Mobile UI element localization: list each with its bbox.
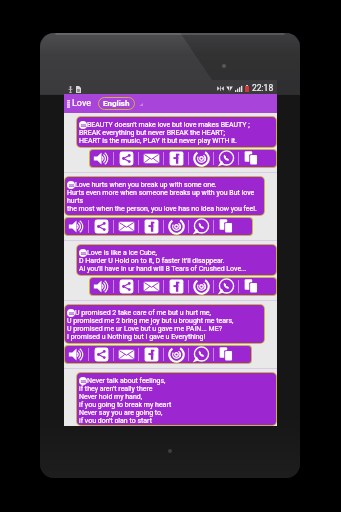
button[interactable]: WhatsApp: [217, 150, 235, 167]
button[interactable]: Menu: [64, 94, 72, 113]
staticText: 22:18: [252, 83, 274, 93]
staticText: the most when the person, you love has n…: [67, 205, 257, 213]
staticText: U promised me 2 bring me joy but u broug…: [67, 317, 234, 325]
button[interactable]: Love hurts when you break up with some o…: [65, 177, 264, 215]
button[interactable]: Love is like a Ice Cube,: [77, 245, 276, 275]
staticText: if you don't plan to start: [79, 417, 152, 423]
button[interactable]: Email: [117, 218, 135, 235]
button[interactable]: U promised 2 take care of me but u hurt …: [65, 305, 264, 343]
button[interactable]: Speak: [92, 278, 110, 295]
staticText: if they aren't really there: [79, 385, 153, 393]
button[interactable]: Facebook: [167, 278, 185, 295]
button[interactable]: English: [98, 97, 135, 110]
staticText: English: [103, 99, 130, 108]
button[interactable]: Speak: [67, 346, 85, 363]
button[interactable]: Speak: [92, 150, 110, 167]
button[interactable]: Copy: [217, 218, 235, 235]
button[interactable]: Copy: [242, 150, 260, 167]
button[interactable]: Instagram: [192, 278, 210, 295]
staticText: if you going to break my heart: [79, 401, 172, 409]
button[interactable]: Copy: [242, 278, 260, 295]
staticText: Hurts even more when someone breaks up w…: [67, 189, 255, 197]
button[interactable]: Instagram: [167, 346, 185, 363]
button[interactable]: Speak: [67, 218, 85, 235]
button[interactable]: Never talk about feelings,: [77, 373, 276, 425]
button[interactable]: Email: [142, 278, 160, 295]
staticText: Al you'll have in ur hand will B Tears o…: [79, 265, 247, 273]
staticText: hurts: [67, 197, 84, 205]
staticText: Love: [72, 98, 91, 109]
button[interactable]: Email: [142, 150, 160, 167]
button[interactable]: Facebook: [142, 218, 160, 235]
button[interactable]: Share: [92, 218, 110, 235]
button[interactable]: Share: [92, 346, 110, 363]
button[interactable]: Instagram: [192, 150, 210, 167]
button[interactable]: WhatsApp: [192, 346, 210, 363]
button[interactable]: Facebook: [142, 346, 160, 363]
button[interactable]: BEAUTY doesn't make love but love makes …: [77, 117, 276, 147]
staticText: Never say you are going to,: [79, 409, 163, 417]
staticText: I promised u Nothing but I gave u Everyt…: [67, 333, 206, 341]
staticText: U promised 2 take care of me but u hurt …: [75, 309, 211, 317]
button[interactable]: Share: [117, 278, 135, 295]
staticText: Never talk about feelings,: [87, 377, 166, 385]
button[interactable]: Copy: [217, 346, 235, 363]
button[interactable]: Share: [117, 150, 135, 167]
button[interactable]: WhatsApp: [217, 278, 235, 295]
button[interactable]: WhatsApp: [192, 218, 210, 235]
button[interactable]: Email: [117, 346, 135, 363]
staticText: Love hurts when you break up with some o…: [75, 181, 217, 189]
staticText: BEAUTY doesn't make love but love makes …: [87, 121, 250, 129]
staticText: HEART is the music, PLAY it but never pl…: [79, 137, 237, 145]
staticText: Love is like a Ice Cube,: [87, 249, 157, 257]
staticText: Never hold my hand,: [79, 393, 143, 401]
staticText: D Harder U Hold on to it, D faster It'll…: [79, 257, 225, 265]
button[interactable]: Facebook: [167, 150, 185, 167]
staticText: U promised me ur Love but u gave me PAIN…: [67, 325, 222, 333]
staticText: BREAK everything but never BREAK the HEA…: [79, 129, 225, 137]
button[interactable]: Instagram: [167, 218, 185, 235]
